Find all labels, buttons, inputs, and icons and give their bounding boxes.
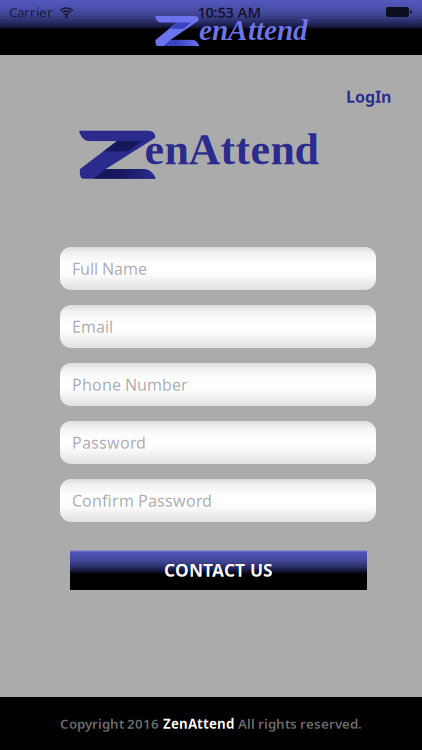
- staticText: All rights reserved.: [238, 715, 362, 732]
- staticText: enAttend: [145, 125, 319, 174]
- button[interactable]: CONTACT US: [70, 550, 367, 590]
- button[interactable]: Full Name: [60, 247, 376, 290]
- staticText: CONTACT US: [164, 558, 273, 581]
- staticText: Email: [72, 316, 113, 337]
- staticText: Confirm Password: [72, 490, 212, 511]
- button[interactable]: Confirm Password: [60, 479, 376, 522]
- button[interactable]: Phone Number: [60, 363, 376, 406]
- staticText: Password: [72, 432, 146, 453]
- button[interactable]: Password: [60, 421, 376, 464]
- staticText: Full Name: [72, 258, 147, 279]
- staticText: Phone Number: [72, 374, 188, 395]
- staticText: enAttend: [199, 14, 308, 46]
- staticText: LogIn: [346, 86, 391, 107]
- staticText: ZenAttend: [163, 715, 234, 732]
- staticText: Carrier: [9, 3, 53, 21]
- button[interactable]: LogIn: [334, 78, 403, 115]
- staticText: Copyright 2016: [60, 715, 159, 732]
- button[interactable]: Email: [60, 305, 376, 348]
- staticText: 10:53 AM: [197, 2, 261, 22]
